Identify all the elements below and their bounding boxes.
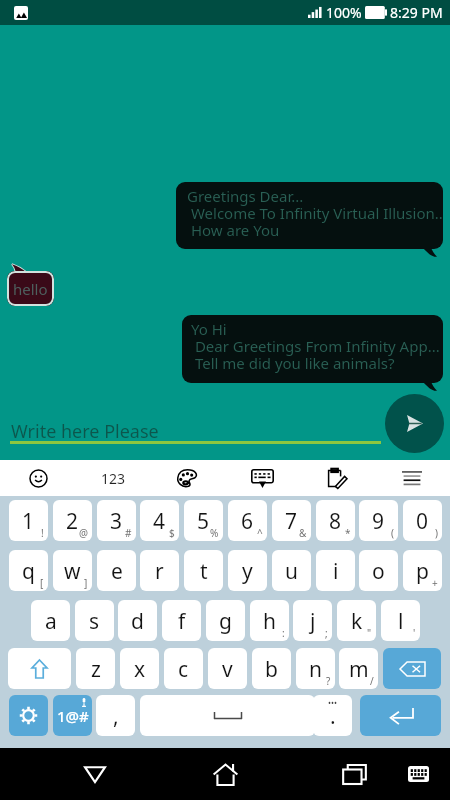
- button[interactable]: Back: [65, 748, 125, 800]
- staticText: p: [416, 557, 429, 586]
- button[interactable]: u: [272, 550, 311, 591]
- button[interactable]: Symbols: [53, 695, 92, 736]
- button[interactable]: g: [206, 600, 245, 641]
- staticText: s: [89, 607, 100, 636]
- button[interactable]: i: [316, 550, 355, 591]
- button[interactable]: Numbers: [89, 460, 137, 496]
- staticText: n: [309, 655, 322, 684]
- button[interactable]: y: [228, 550, 267, 591]
- button[interactable]: m: [339, 648, 378, 689]
- button[interactable]: 8: [316, 500, 355, 541]
- button[interactable]: Write here Please: [11, 419, 371, 444]
- staticText: !: [41, 526, 44, 540]
- staticText: r: [155, 557, 164, 586]
- button[interactable]: 2: [53, 500, 92, 541]
- button[interactable]: x: [120, 648, 159, 689]
- button[interactable]: .: [313, 695, 352, 736]
- button[interactable]: Send: [385, 394, 444, 453]
- button[interactable]: Space: [140, 695, 315, 736]
- button[interactable]: 5: [184, 500, 223, 541]
- button[interactable]: Menu: [388, 460, 436, 496]
- staticText: m: [349, 655, 369, 684]
- button[interactable]: Theme: [163, 460, 211, 496]
- staticText: 123: [101, 469, 126, 488]
- button[interactable]: 6: [228, 500, 267, 541]
- staticText: e: [111, 557, 123, 586]
- button[interactable]: j: [293, 600, 332, 641]
- button[interactable]: 3: [97, 500, 136, 541]
- button[interactable]: f: [162, 600, 201, 641]
- button[interactable]: Clipboard: [313, 460, 361, 496]
- staticText: /: [370, 674, 374, 688]
- staticText: *: [345, 526, 351, 540]
- staticText: y: [242, 557, 253, 586]
- button[interactable]: q: [9, 550, 48, 591]
- staticText: +: [432, 576, 438, 590]
- button[interactable]: ,: [96, 695, 135, 736]
- button[interactable]: Keyboard layout: [238, 460, 286, 496]
- button[interactable]: b: [252, 648, 291, 689]
- staticText: ,: [113, 702, 119, 731]
- button[interactable]: 9: [359, 500, 398, 541]
- button[interactable]: z: [76, 648, 115, 689]
- button[interactable]: 1: [9, 500, 48, 541]
- staticText: 100%: [326, 3, 362, 22]
- staticText: #: [125, 526, 132, 540]
- staticText: ': [413, 626, 416, 640]
- staticText: 0: [416, 507, 429, 536]
- staticText: 8:29 PM: [390, 3, 443, 22]
- staticText: :: [282, 626, 285, 640]
- button[interactable]: Settings: [9, 695, 48, 736]
- staticText: o: [372, 557, 385, 586]
- button[interactable]: Emoji: [14, 460, 62, 496]
- button[interactable]: w: [53, 550, 92, 591]
- staticText: v: [222, 655, 233, 684]
- button[interactable]: e: [97, 550, 136, 591]
- staticText: Write here Please: [11, 419, 159, 444]
- staticText: .: [330, 702, 336, 731]
- button[interactable]: o: [359, 550, 398, 591]
- button[interactable]: s: [75, 600, 114, 641]
- staticText: 1: [22, 507, 35, 536]
- button[interactable]: n: [296, 648, 335, 689]
- button[interactable]: Shift: [8, 648, 71, 689]
- staticText: 7: [285, 507, 298, 536]
- button[interactable]: 4: [140, 500, 179, 541]
- staticText: ]: [84, 576, 88, 590]
- button[interactable]: Greetings Dear... Welcome To Infinity Vi…: [176, 182, 443, 249]
- staticText: j: [310, 607, 316, 636]
- staticText: x: [134, 655, 146, 684]
- button[interactable]: p: [403, 550, 442, 591]
- staticText: hello: [13, 279, 48, 299]
- staticText: g: [219, 607, 232, 636]
- staticText: @: [79, 526, 88, 540]
- staticText: h: [263, 607, 276, 636]
- button[interactable]: a: [31, 600, 70, 641]
- button[interactable]: Keyboard: [388, 748, 448, 800]
- staticText: 3: [110, 507, 123, 536]
- staticText: 1@#: [57, 706, 89, 726]
- button[interactable]: Backspace: [383, 648, 441, 689]
- button[interactable]: c: [164, 648, 203, 689]
- button[interactable]: l: [381, 600, 420, 641]
- button[interactable]: hello: [7, 271, 54, 306]
- button[interactable]: Yo Hi Dear Greetings From Infinity App..…: [182, 315, 443, 383]
- button[interactable]: Enter: [360, 695, 441, 736]
- button[interactable]: h: [250, 600, 289, 641]
- staticText: z: [91, 655, 101, 684]
- staticText: d: [131, 607, 144, 636]
- button[interactable]: Recents: [324, 748, 384, 800]
- staticText: •••: [328, 697, 338, 708]
- button[interactable]: k: [337, 600, 376, 641]
- button[interactable]: Home: [195, 748, 255, 800]
- button[interactable]: d: [118, 600, 157, 641]
- button[interactable]: v: [208, 648, 247, 689]
- staticText: $: [169, 526, 175, 540]
- button[interactable]: 7: [272, 500, 311, 541]
- staticText: 2: [66, 507, 79, 536]
- staticText: 4: [153, 507, 166, 536]
- staticText: ^: [257, 526, 263, 540]
- button[interactable]: r: [140, 550, 179, 591]
- button[interactable]: t: [184, 550, 223, 591]
- button[interactable]: 0: [403, 500, 442, 541]
